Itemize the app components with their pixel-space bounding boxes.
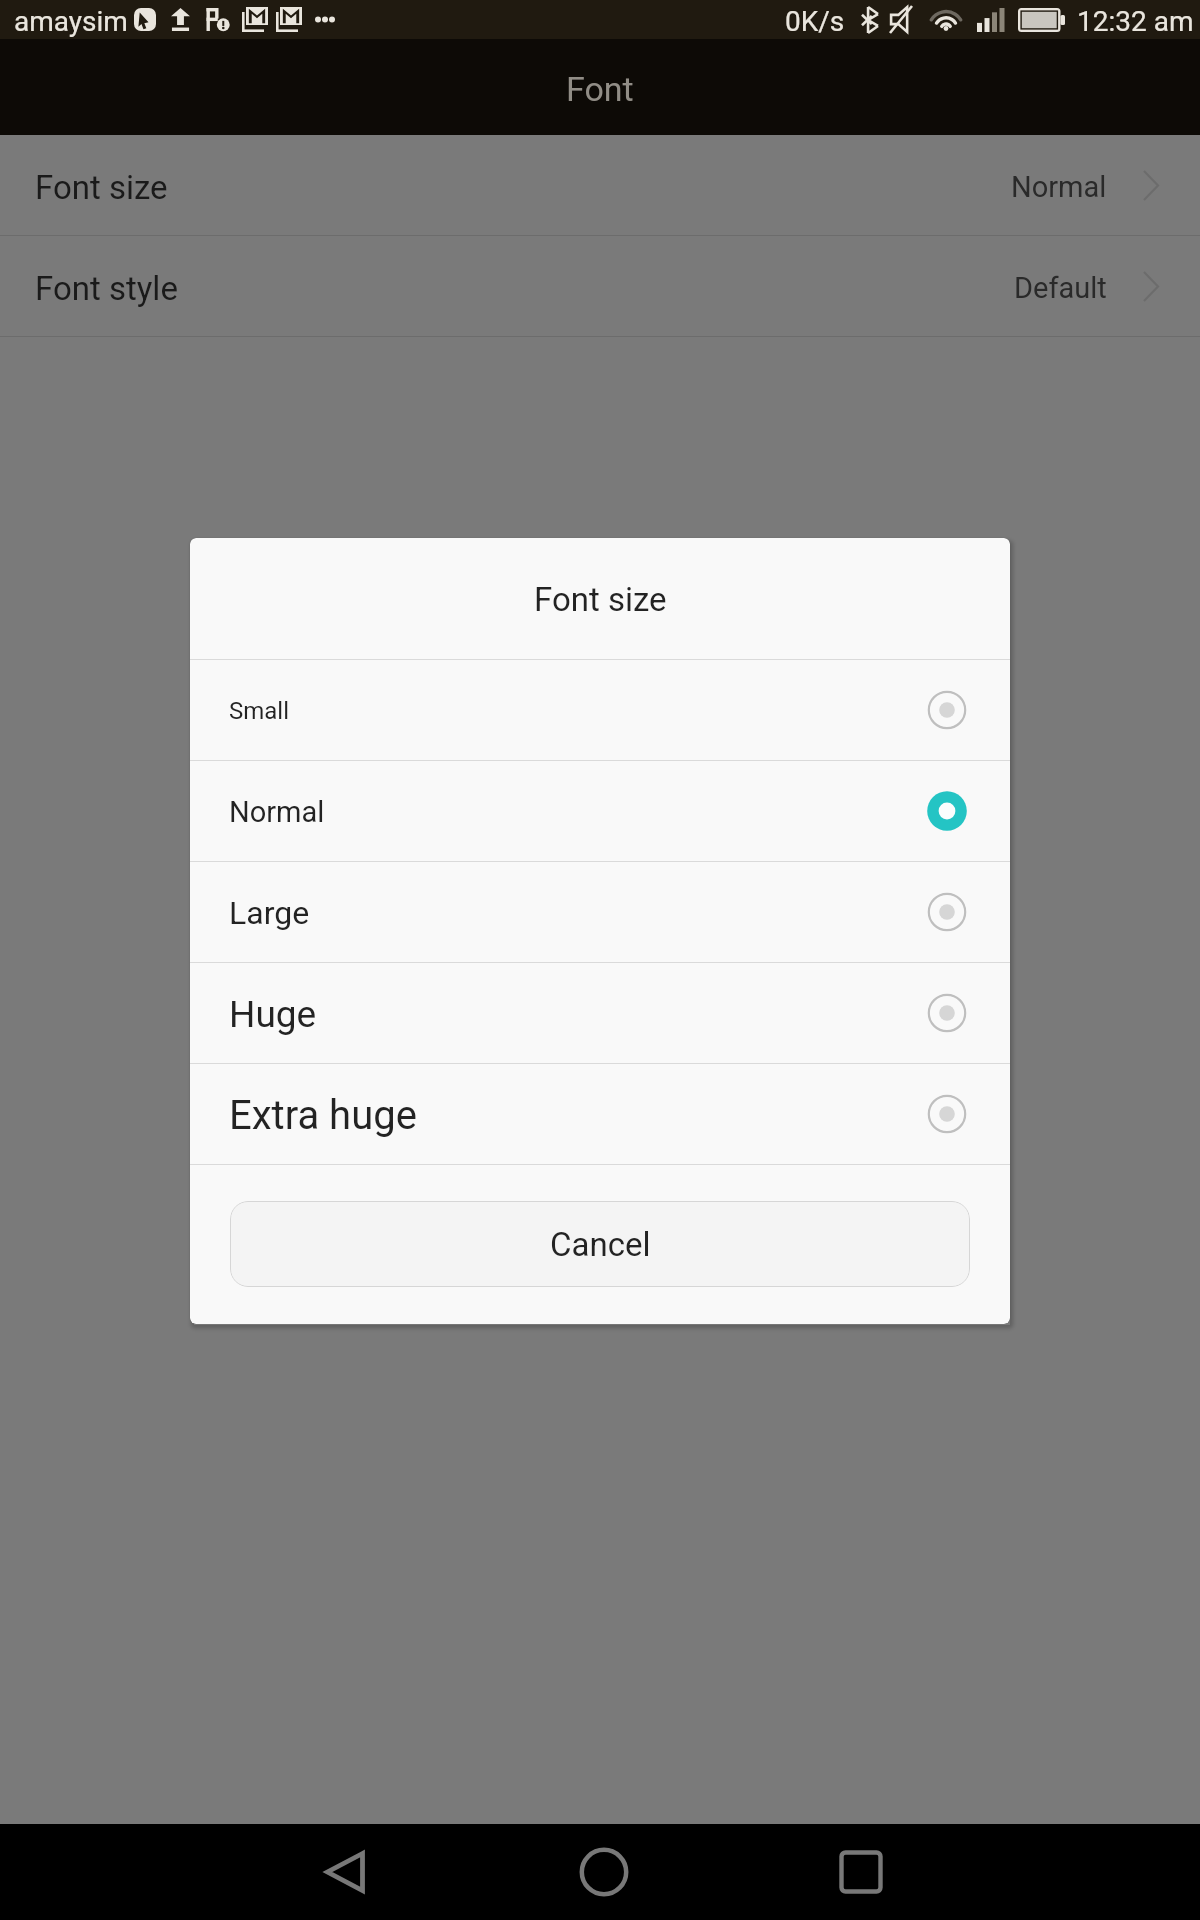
staticText: Normal <box>1011 170 1107 204</box>
button[interactable]: Home <box>554 1824 654 1920</box>
staticText: Font <box>566 69 634 109</box>
staticText: Large <box>229 894 310 932</box>
staticText: 0K/s <box>785 5 845 38</box>
button[interactable]: Font size <box>0 135 1200 235</box>
staticText: Extra huge <box>229 1092 417 1139</box>
button[interactable]: Huge <box>190 963 1010 1063</box>
button[interactable]: Cancel <box>230 1201 970 1287</box>
button[interactable]: Large <box>190 862 1010 962</box>
staticText: Font size <box>35 168 168 207</box>
button[interactable]: Normal <box>190 761 1010 861</box>
button[interactable]: Extra huge <box>190 1064 1010 1164</box>
button[interactable]: Back <box>295 1824 395 1920</box>
staticText: amaysim <box>14 5 128 38</box>
staticText: Font style <box>35 269 178 308</box>
staticText: Default <box>1014 271 1107 305</box>
staticText: Huge <box>229 993 317 1036</box>
button[interactable]: Dismiss dialog <box>0 0 1200 1920</box>
button[interactable]: Font style <box>0 236 1200 336</box>
staticText: Normal <box>229 795 325 829</box>
staticText: Cancel <box>550 1225 651 1264</box>
staticText: 12:32 am <box>1077 5 1194 38</box>
button[interactable]: Small <box>190 660 1010 760</box>
staticText: Small <box>229 697 290 725</box>
staticText: Font size <box>534 580 667 619</box>
button[interactable]: Recents <box>811 1824 911 1920</box>
